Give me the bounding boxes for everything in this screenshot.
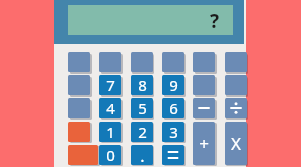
button[interactable]: 3 [162,122,184,142]
button[interactable]: Function key [225,75,247,95]
staticText: 3 [169,122,178,142]
button[interactable]: Function key [68,52,90,72]
staticText: 2 [138,122,147,142]
button[interactable]: Function key [193,75,215,95]
button[interactable]: Function key [225,52,247,72]
button[interactable] [68,5,233,35]
staticText: 6 [169,98,178,118]
button[interactable]: . [131,145,153,165]
button[interactable]: Function key [131,52,153,72]
button[interactable]: Minus [193,98,215,118]
staticText: X [231,132,241,155]
staticText: 1 [106,122,115,142]
button[interactable]: 1 [99,122,121,142]
button[interactable]: Function key [68,98,90,118]
button[interactable]: 5 [131,98,153,118]
button[interactable]: Divide [225,98,247,118]
staticText: 9 [169,75,178,95]
button[interactable]: Function key [68,75,90,95]
button[interactable]: 4 [99,98,121,118]
staticText: 0 [106,145,115,165]
button[interactable]: 6 [162,98,184,118]
button[interactable]: Clear [68,122,90,142]
staticText: + [199,132,209,155]
button[interactable]: Equals [162,145,184,165]
button[interactable]: 0 [99,145,121,165]
staticText: 7 [106,75,115,95]
staticText: 5 [138,98,147,118]
button[interactable]: All clear [68,145,98,165]
staticText: 8 [138,75,147,95]
button[interactable]: 2 [131,122,153,142]
staticText: ? [210,8,220,32]
button[interactable]: Function key [99,52,121,72]
button[interactable]: + [193,122,215,165]
button[interactable]: Function key [193,52,215,72]
button[interactable]: 9 [162,75,184,95]
button[interactable]: Function key [162,52,184,72]
button[interactable]: 7 [99,75,121,95]
button[interactable]: 8 [131,75,153,95]
staticText: 4 [106,98,115,118]
staticText: . [140,145,145,165]
button[interactable]: X [225,122,247,165]
